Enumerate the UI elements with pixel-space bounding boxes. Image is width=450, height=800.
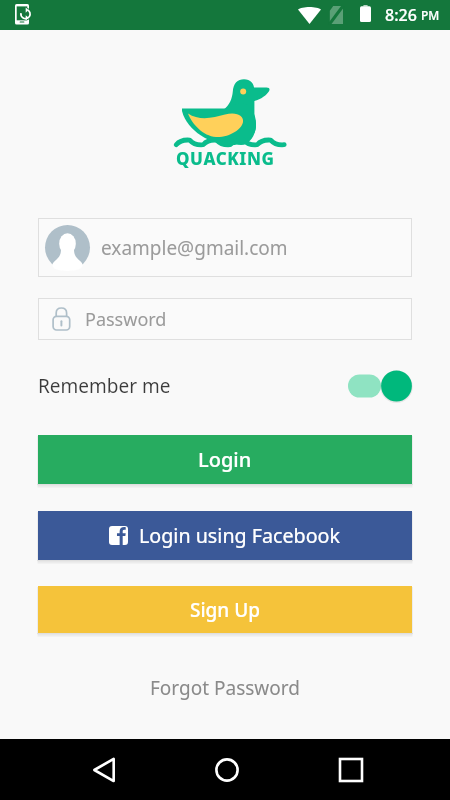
staticText: Password bbox=[85, 307, 167, 332]
button[interactable]: Home bbox=[197, 739, 257, 800]
staticText: PM bbox=[421, 7, 440, 23]
staticText: 8:26 bbox=[385, 4, 417, 26]
staticText: Login using Facebook bbox=[139, 522, 341, 549]
button[interactable]: Recents bbox=[321, 739, 381, 800]
staticText: QUACKING bbox=[176, 147, 275, 170]
button[interactable]: Login bbox=[38, 435, 412, 484]
button[interactable]: Sign Up bbox=[38, 586, 412, 633]
button[interactable]: Remember me toggle bbox=[348, 370, 412, 402]
button[interactable]: Forgot Password bbox=[0, 668, 450, 708]
staticText: Login bbox=[198, 446, 252, 473]
button[interactable]: Back bbox=[74, 739, 134, 800]
staticText: example@gmail.com bbox=[101, 235, 288, 261]
staticText: Forgot Password bbox=[150, 675, 300, 701]
button[interactable]: Login using Facebook bbox=[38, 511, 412, 560]
button[interactable]: Password bbox=[38, 298, 412, 340]
button[interactable]: example@gmail.com bbox=[38, 218, 412, 277]
staticText: Sign Up bbox=[190, 597, 261, 623]
staticText: Remember me bbox=[38, 373, 171, 399]
